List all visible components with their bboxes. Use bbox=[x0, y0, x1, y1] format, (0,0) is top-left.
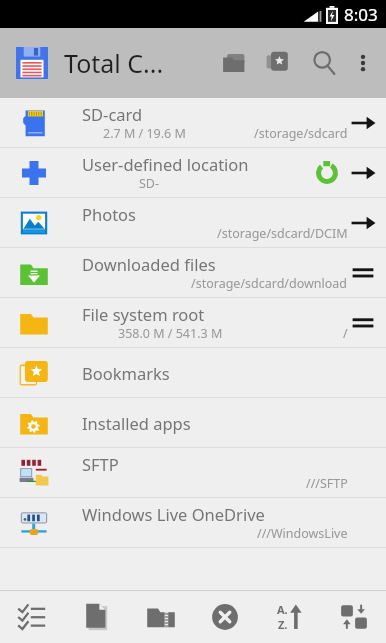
staticText: ///SFTP bbox=[306, 475, 348, 492]
button[interactable]: SFTP bbox=[0, 448, 386, 498]
staticText: 2.7 M / 19.6 M bbox=[103, 125, 186, 142]
button[interactable]: Sort bbox=[264, 591, 316, 643]
button[interactable]: Zip bbox=[135, 591, 187, 643]
staticText: Windows Live OneDrive bbox=[82, 503, 265, 525]
staticText: 8:03 bbox=[344, 3, 378, 26]
button[interactable]: Open bbox=[348, 108, 378, 138]
button[interactable]: Bookmarks bbox=[258, 41, 302, 85]
button[interactable]: User-defined location bbox=[0, 148, 386, 198]
button[interactable]: Reorder bbox=[348, 308, 378, 338]
button[interactable]: Photos bbox=[0, 198, 386, 248]
staticText: Photos bbox=[82, 203, 137, 225]
staticText: /storage/sdcard bbox=[254, 125, 348, 142]
button[interactable]: Folders bbox=[214, 41, 258, 85]
button[interactable]: Installed apps bbox=[0, 398, 386, 448]
button[interactable]: Windows Live OneDrive bbox=[0, 498, 386, 548]
staticText: 358.0 M / 541.3 M bbox=[118, 325, 223, 342]
button[interactable]: More options bbox=[346, 46, 380, 80]
button[interactable]: Select bbox=[6, 591, 58, 643]
staticText: Downloaded files bbox=[82, 253, 216, 275]
staticText: SFTP bbox=[82, 453, 119, 475]
staticText: / bbox=[343, 325, 348, 342]
staticText: Total C... bbox=[64, 46, 164, 80]
button[interactable]: New file bbox=[71, 591, 123, 643]
staticText: File system root bbox=[82, 303, 205, 325]
button[interactable]: Open bbox=[348, 208, 378, 238]
staticText: Bookmarks bbox=[82, 362, 170, 384]
button[interactable] bbox=[12, 43, 52, 83]
button[interactable]: Exchange bbox=[328, 591, 380, 643]
button[interactable]: Reorder bbox=[348, 258, 378, 288]
staticText: User-defined location bbox=[82, 153, 249, 175]
button[interactable]: File system root bbox=[0, 298, 386, 348]
staticText: Installed apps bbox=[82, 412, 191, 434]
button[interactable]: Open bbox=[348, 158, 378, 188]
staticText: /storage/sdcard/download bbox=[191, 275, 348, 292]
button[interactable]: Downloaded files bbox=[0, 248, 386, 298]
button[interactable]: Refresh bbox=[312, 158, 342, 188]
staticText: SD-card bbox=[82, 103, 143, 125]
staticText: SD- bbox=[139, 175, 160, 192]
button[interactable]: SD-card bbox=[0, 98, 386, 148]
staticText: ///WindowsLive bbox=[257, 525, 348, 542]
staticText: /storage/sdcard/DCIM bbox=[217, 225, 348, 242]
staticText: Z. bbox=[278, 617, 288, 632]
button[interactable]: Bookmarks bbox=[0, 348, 386, 398]
staticText: A. bbox=[277, 602, 288, 617]
button[interactable]: Close bbox=[199, 591, 251, 643]
button[interactable]: Search bbox=[302, 41, 346, 85]
